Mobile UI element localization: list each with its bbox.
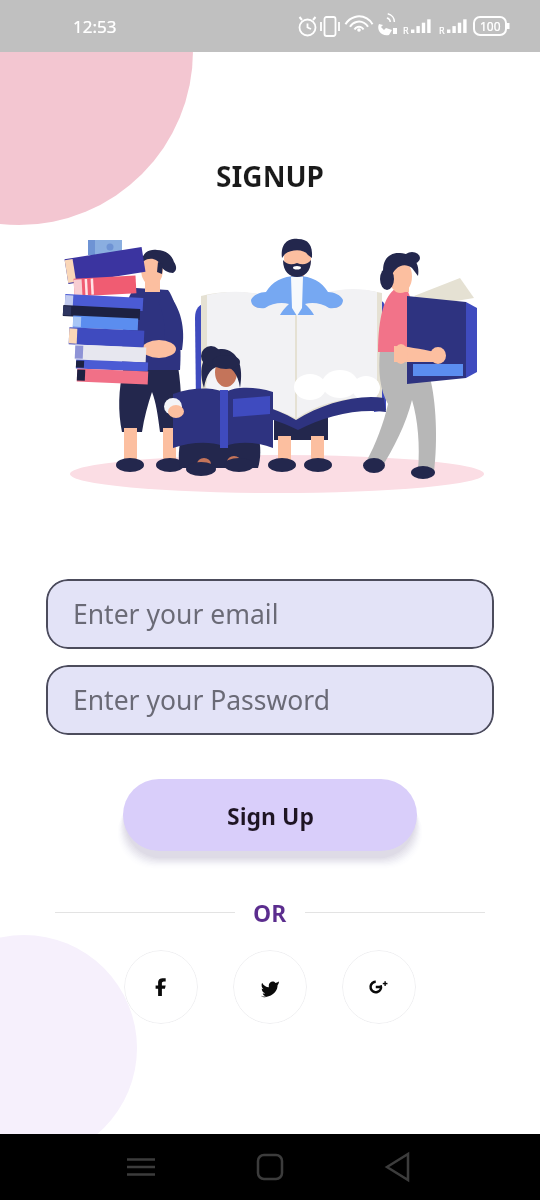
staticText: R [439, 24, 445, 36]
staticText: 12:53 [73, 15, 117, 38]
button[interactable]: Enter your email [46, 579, 494, 649]
staticText: SIGNUP [0, 157, 540, 195]
staticText: Enter your email [73, 596, 279, 632]
staticText: R [403, 24, 409, 36]
button[interactable]: Enter your Password [46, 665, 494, 735]
staticText: 100 [480, 18, 501, 34]
staticText: Sign Up [227, 800, 314, 831]
staticText: Enter your Password [73, 682, 331, 718]
button[interactable]: Sign Up [123, 779, 417, 851]
button[interactable]: Sign up with Twitter [233, 950, 307, 1024]
staticText: OR [253, 897, 287, 928]
button[interactable]: Sign up with Facebook [124, 950, 198, 1024]
button[interactable]: Sign up with Google [342, 950, 416, 1024]
